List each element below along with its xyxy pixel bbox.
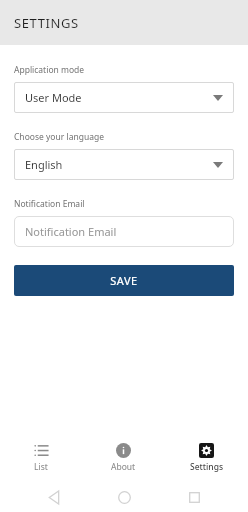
button[interactable]: Notification Email [14, 216, 234, 247]
staticText: User Mode [25, 90, 82, 105]
staticText: Choose your language [14, 131, 104, 143]
staticText: SETTINGS [14, 14, 79, 32]
staticText: English [25, 157, 63, 172]
button[interactable]: Settings [165, 439, 248, 477]
button[interactable]: About [82, 439, 165, 477]
button[interactable]: SAVE [14, 265, 234, 296]
staticText: Application mode [14, 64, 85, 76]
button[interactable]: English [14, 149, 234, 180]
staticText: Notification Email [25, 224, 117, 239]
button[interactable]: Back [34, 486, 74, 508]
staticText: About [111, 461, 136, 473]
staticText: List [34, 461, 48, 473]
button[interactable]: User Mode [14, 82, 234, 113]
button[interactable]: List [0, 439, 82, 477]
staticText: Notification Email [14, 198, 85, 210]
staticText: Settings [190, 461, 224, 473]
staticText: SAVE [110, 273, 138, 288]
button[interactable]: Home [104, 486, 144, 508]
button[interactable]: Recent apps [174, 486, 214, 508]
